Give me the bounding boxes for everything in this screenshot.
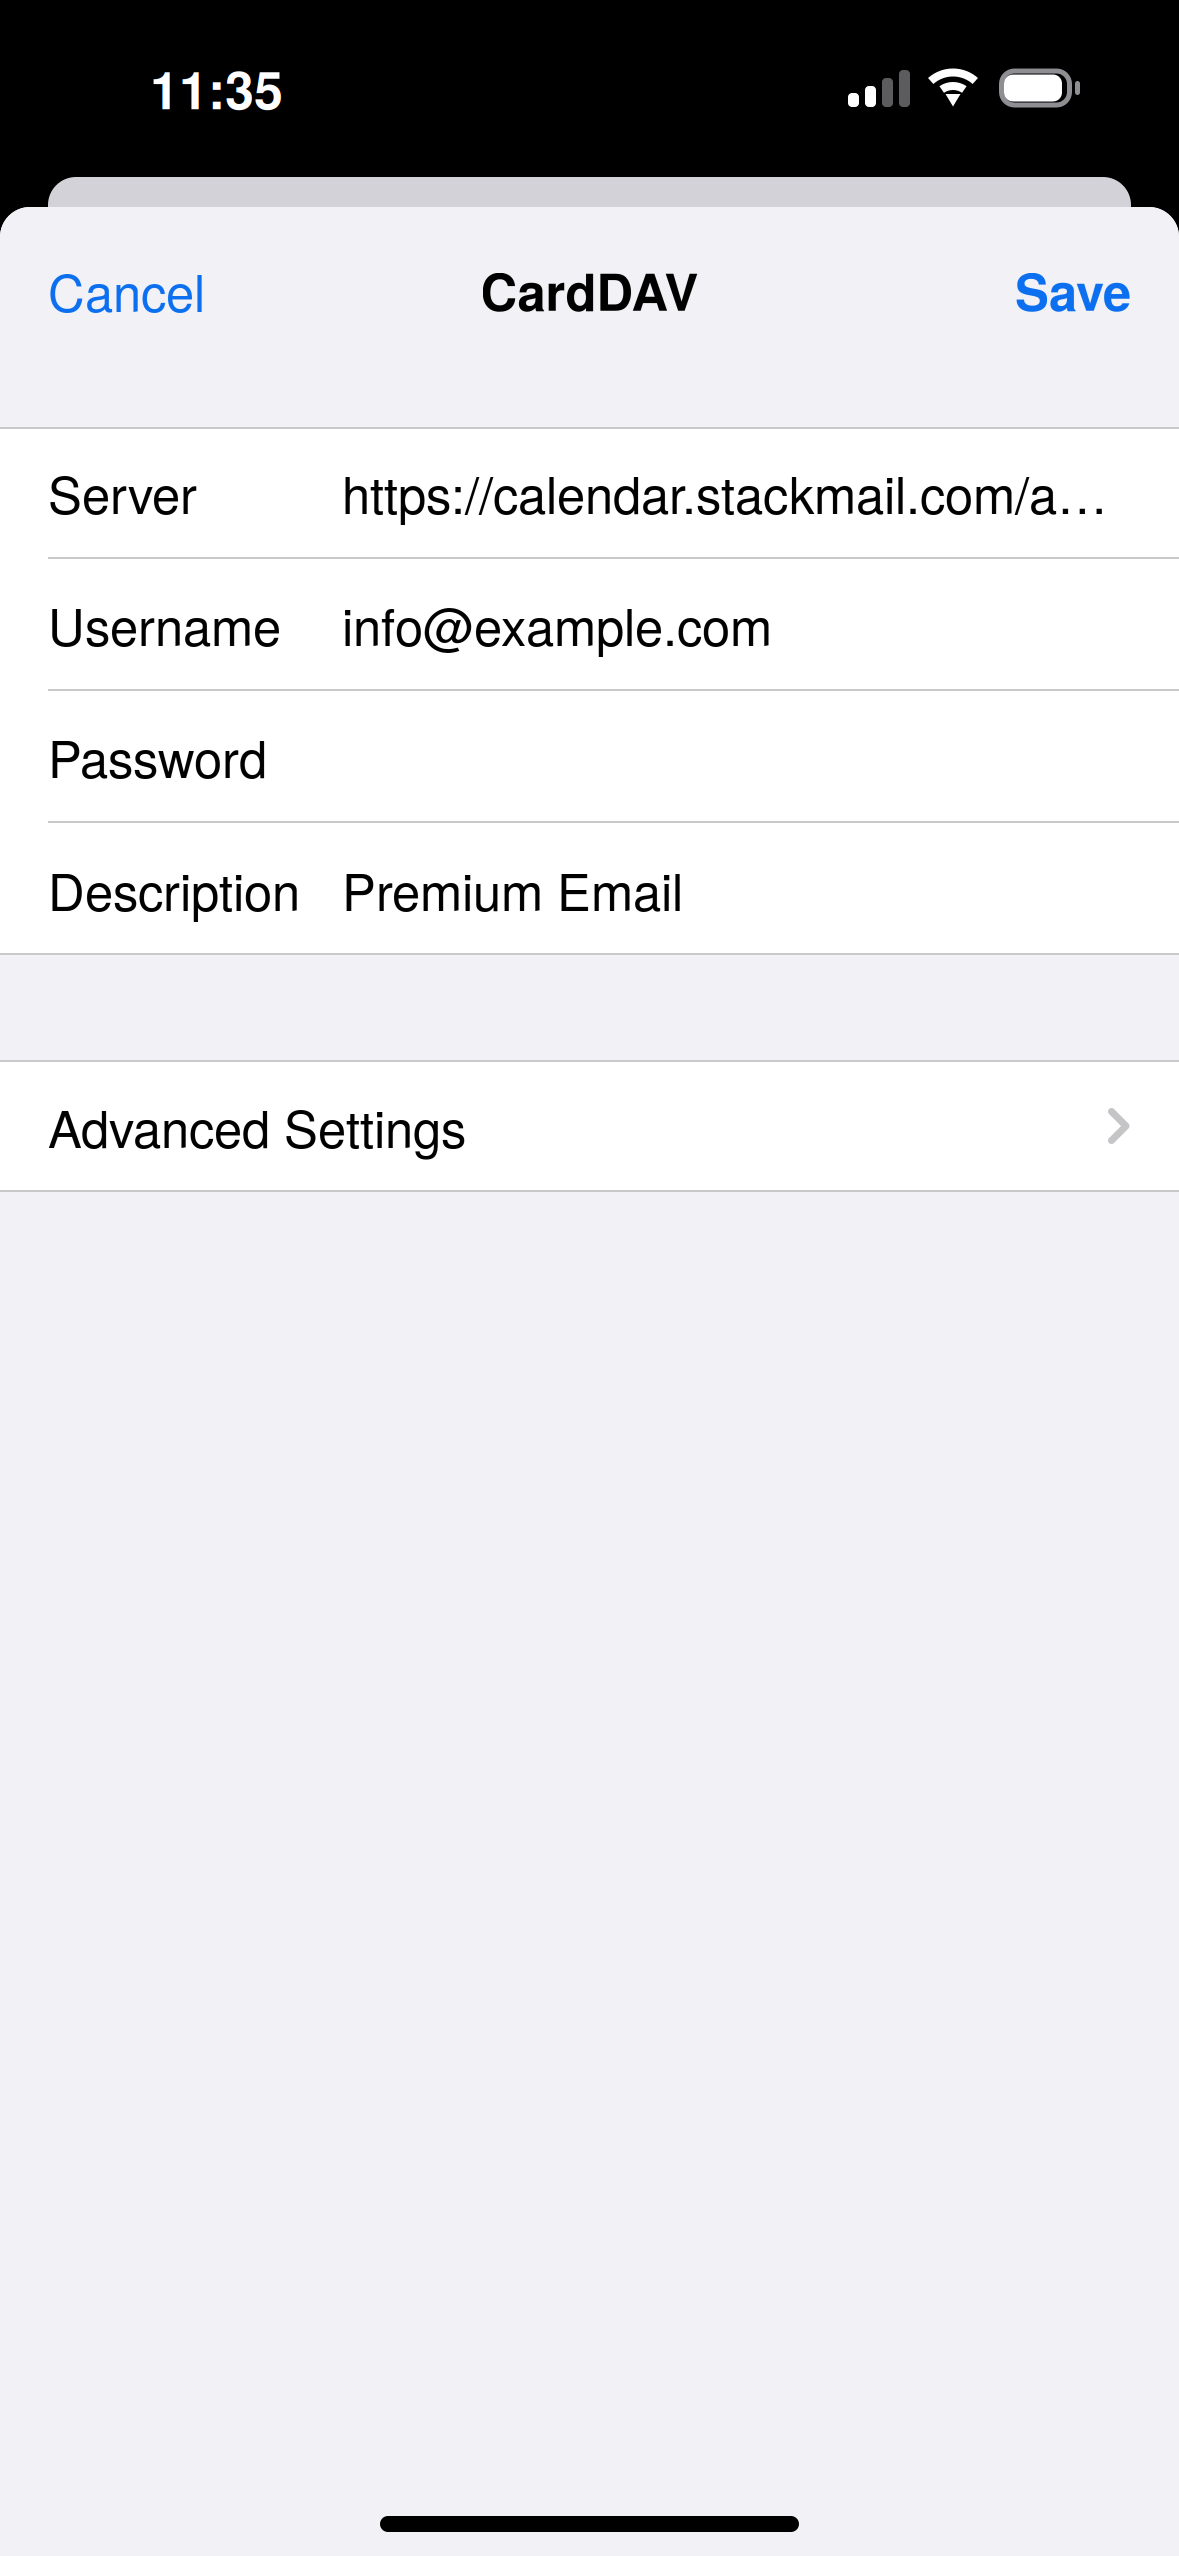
staticText: info@example.com: [342, 588, 772, 660]
staticText: Cancel: [48, 254, 205, 326]
staticText: Save: [1015, 254, 1131, 326]
staticText: Password: [48, 720, 267, 792]
staticText: 11:35: [150, 51, 283, 125]
staticText: Advanced Settings: [48, 1090, 466, 1162]
staticText: CardDAV: [480, 254, 698, 326]
button[interactable]: Cancel: [48, 259, 208, 321]
button[interactable]: Advanced Settings: [0, 1060, 1179, 1192]
button[interactable]: Password: [0, 691, 1179, 823]
staticText: Server: [48, 456, 197, 528]
button[interactable]: Username: [0, 559, 1179, 691]
staticText: Description: [48, 853, 300, 925]
staticText: Premium Email: [342, 853, 683, 925]
button[interactable]: Server: [0, 427, 1179, 559]
staticText: https://calendar.stackmail.com/addres…: [342, 456, 1120, 528]
button[interactable]: Description: [0, 823, 1179, 955]
staticText: Username: [48, 588, 281, 660]
button[interactable]: Save: [1001, 259, 1131, 321]
